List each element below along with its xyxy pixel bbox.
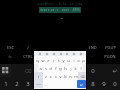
button[interactable]: k bbox=[73, 64, 78, 72]
staticText: END bbox=[88, 45, 97, 50]
button[interactable]: 9 bbox=[98, 77, 109, 90]
button[interactable]: ⌫ bbox=[78, 72, 86, 80]
staticText: d bbox=[49, 66, 52, 71]
button[interactable]: y bbox=[61, 56, 66, 64]
staticText: CTRL bbox=[23, 54, 33, 59]
button[interactable]: Keyboard grid bbox=[0, 64, 11, 77]
staticText: 0 bbox=[113, 80, 117, 88]
button[interactable]: 1 bbox=[0, 77, 11, 90]
staticText: c bbox=[55, 74, 57, 79]
staticText: r bbox=[53, 58, 55, 63]
button[interactable]: u bbox=[66, 56, 71, 64]
button[interactable]: j bbox=[68, 64, 73, 72]
button[interactable]: g bbox=[58, 64, 63, 72]
button[interactable]: s bbox=[43, 64, 48, 72]
button[interactable]: o bbox=[76, 56, 81, 64]
staticText: 9 bbox=[102, 80, 106, 88]
staticText: drwxr-xr-x root 4096 bbox=[40, 8, 80, 12]
button[interactable]: 3 bbox=[22, 77, 33, 90]
staticText: t bbox=[58, 58, 60, 63]
staticText: . bbox=[74, 82, 75, 86]
button[interactable]: e bbox=[46, 56, 51, 64]
button[interactable]: END bbox=[84, 44, 100, 51]
button[interactable]: / bbox=[20, 44, 36, 51]
button[interactable] bbox=[59, 52, 62, 55]
button[interactable]: ↵ bbox=[77, 80, 86, 88]
button[interactable]: CTRL bbox=[20, 53, 36, 60]
button[interactable] bbox=[45, 52, 48, 55]
button[interactable] bbox=[79, 52, 82, 55]
button[interactable]: c bbox=[53, 72, 58, 80]
staticText: n bbox=[69, 74, 72, 79]
button[interactable] bbox=[52, 52, 55, 55]
button[interactable]: x bbox=[48, 72, 53, 80]
staticText: user@host ~ $ ls -la /var bbox=[37, 2, 83, 6]
button[interactable]: Backspace bbox=[22, 64, 33, 77]
button[interactable]: Zero bbox=[87, 64, 98, 77]
staticText: 1 bbox=[4, 80, 8, 88]
button[interactable]: , bbox=[43, 80, 48, 88]
staticText: , bbox=[45, 82, 46, 86]
staticText: l bbox=[80, 66, 82, 71]
button[interactable]: PGUP bbox=[100, 44, 120, 51]
button[interactable]: l bbox=[78, 64, 83, 72]
staticText: PGUP bbox=[105, 45, 116, 50]
button[interactable]: 0 bbox=[109, 77, 120, 90]
button[interactable]: ↹ bbox=[0, 53, 20, 60]
staticText: 3 bbox=[26, 80, 30, 88]
button[interactable]: h bbox=[63, 64, 68, 72]
button[interactable]: a bbox=[38, 64, 43, 72]
staticText: ~ bbox=[91, 54, 94, 59]
button[interactable]: ~ bbox=[84, 53, 100, 60]
staticText: ⌫ bbox=[24, 68, 32, 74]
staticText: j bbox=[70, 66, 72, 71]
button[interactable]: ⇧ bbox=[34, 72, 43, 80]
button[interactable]: Enter bbox=[109, 64, 120, 77]
button[interactable] bbox=[72, 52, 75, 55]
staticText: s bbox=[45, 66, 47, 71]
staticText: m bbox=[74, 74, 78, 79]
button[interactable]: w bbox=[40, 56, 46, 64]
staticText: p bbox=[82, 58, 85, 63]
staticText: f bbox=[55, 66, 57, 71]
button[interactable]: ESC bbox=[0, 44, 20, 51]
button[interactable]: v bbox=[58, 72, 63, 80]
button[interactable]: f bbox=[53, 64, 58, 72]
staticText: q bbox=[36, 58, 39, 63]
button[interactable]: b bbox=[63, 72, 68, 80]
button[interactable]: p bbox=[81, 56, 86, 64]
button[interactable]: 8 bbox=[87, 77, 98, 90]
staticText: o bbox=[77, 58, 80, 63]
staticText: ↵ bbox=[80, 83, 83, 86]
staticText: e bbox=[47, 58, 50, 63]
button[interactable]: PGDN bbox=[100, 53, 120, 60]
staticText: 2 bbox=[15, 80, 19, 88]
staticText: u bbox=[67, 58, 70, 63]
button[interactable]: m bbox=[73, 72, 78, 80]
staticText: v bbox=[59, 74, 62, 79]
button[interactable]: r bbox=[51, 56, 56, 64]
staticText: _ bbox=[61, 15, 63, 19]
button[interactable]: . bbox=[72, 80, 77, 88]
staticText: w bbox=[41, 58, 45, 63]
button[interactable]: q bbox=[34, 56, 40, 64]
button[interactable]: i bbox=[71, 56, 76, 64]
button[interactable] bbox=[65, 52, 68, 55]
button[interactable]: n bbox=[68, 72, 73, 80]
button[interactable]: 2 bbox=[11, 77, 22, 90]
button[interactable] bbox=[38, 52, 41, 55]
staticText: k bbox=[74, 66, 77, 71]
button[interactable]: t bbox=[56, 56, 61, 64]
staticText: z bbox=[45, 74, 47, 79]
button[interactable]: ?123 bbox=[34, 80, 43, 88]
button[interactable]: drwxr-xr-x root 4096 bbox=[40, 8, 80, 12]
staticText: x bbox=[49, 74, 52, 79]
button[interactable]: d bbox=[48, 64, 53, 72]
button[interactable]: z bbox=[43, 72, 48, 80]
staticText: i bbox=[73, 58, 75, 63]
staticText: ESC bbox=[7, 45, 14, 50]
staticText: b bbox=[64, 74, 67, 79]
